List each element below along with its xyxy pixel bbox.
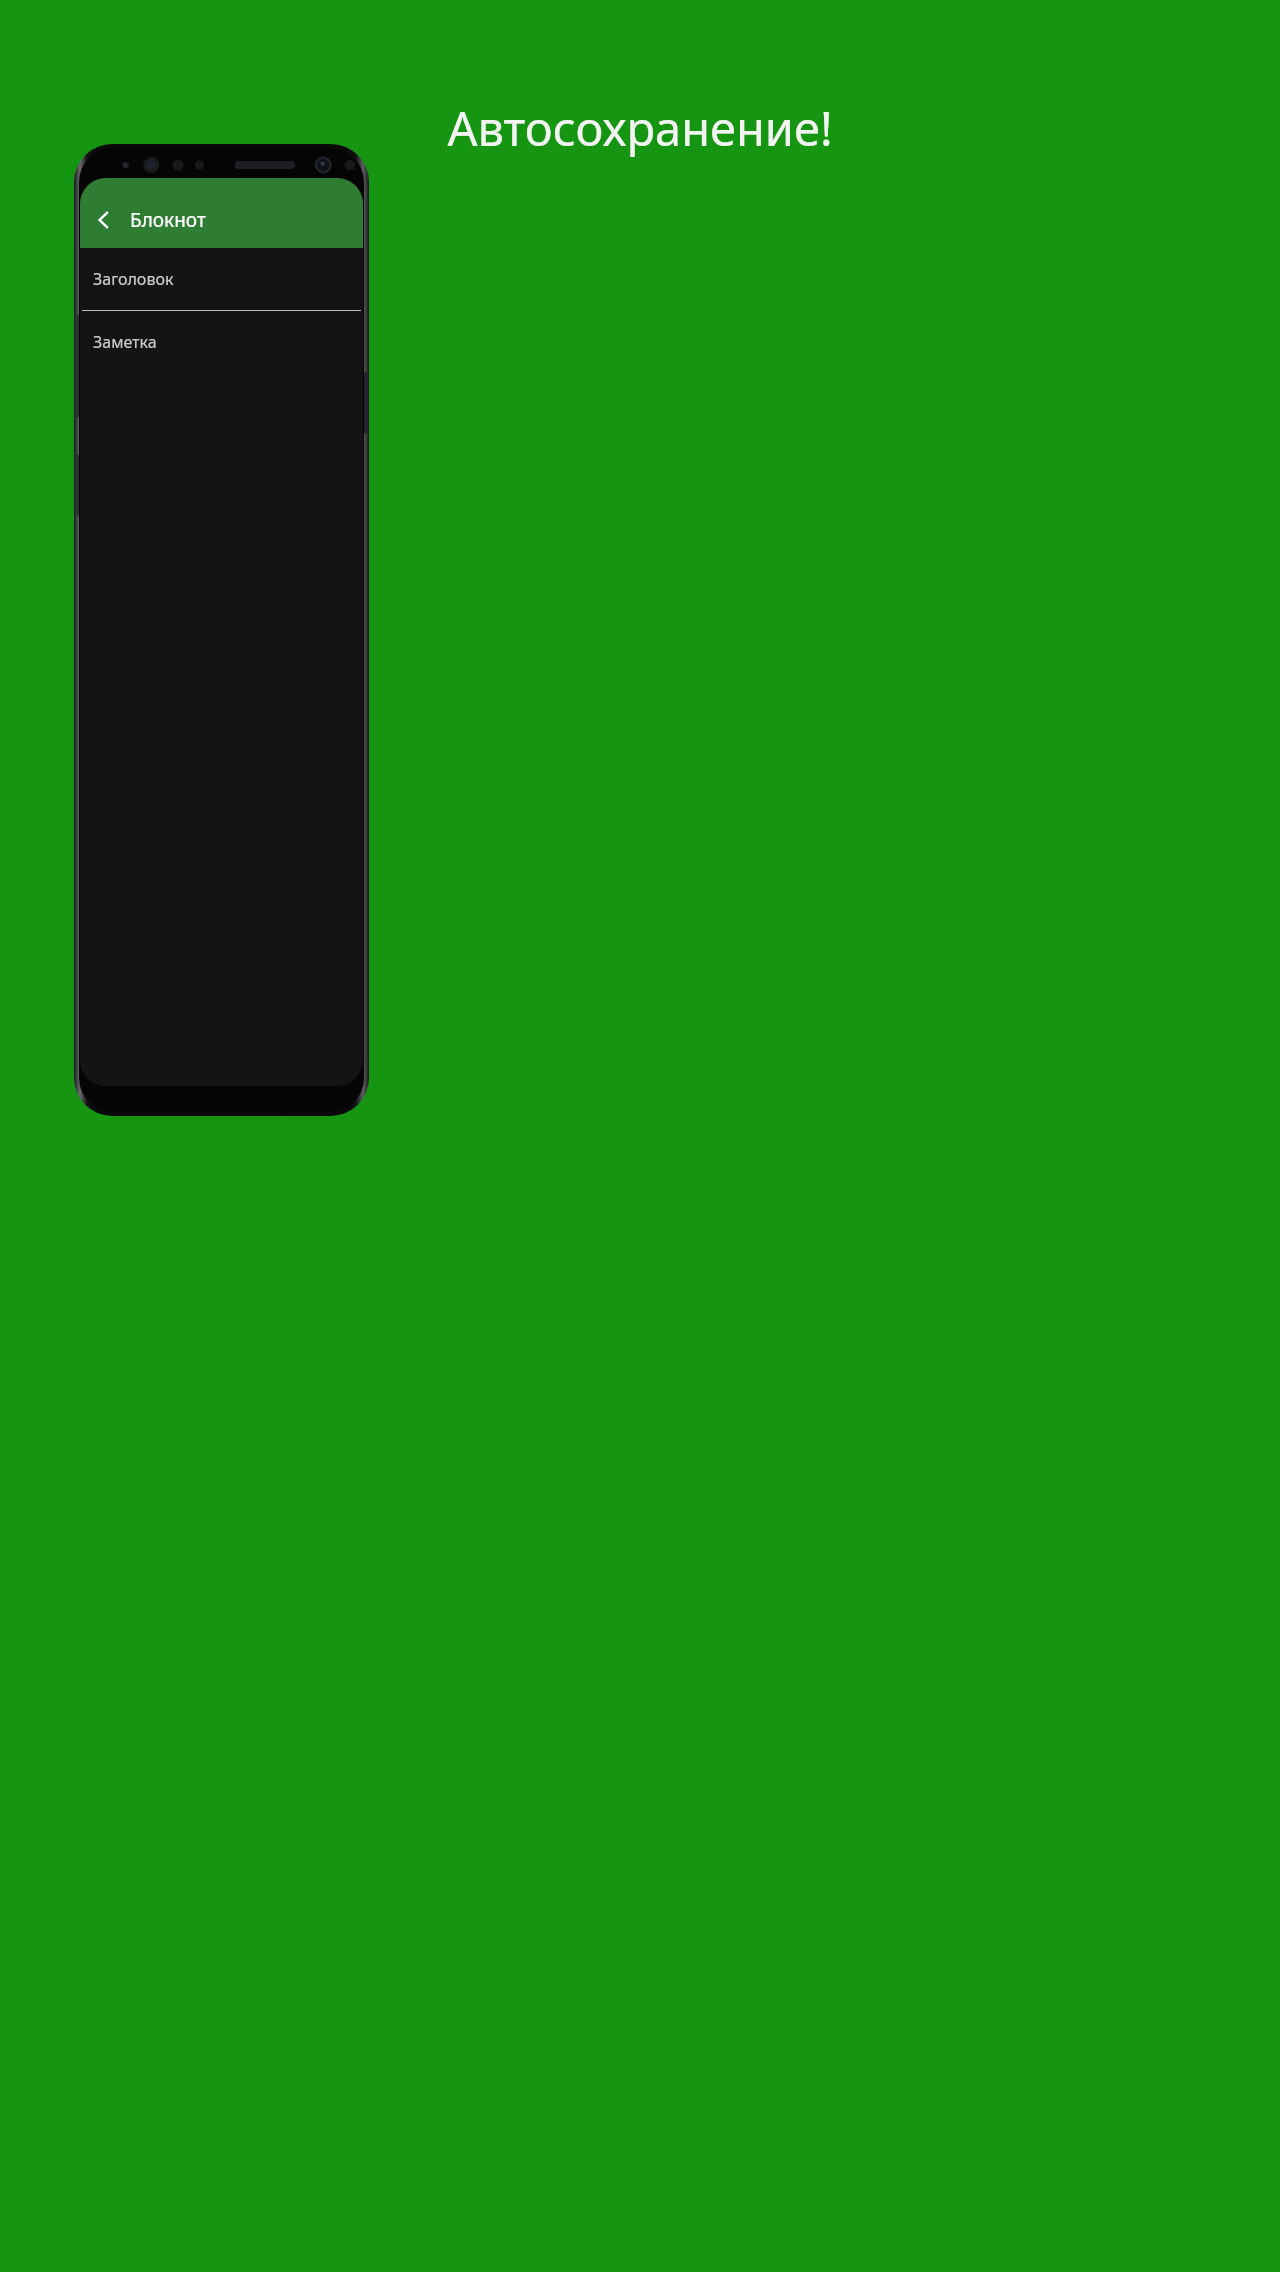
staticText: Блокнот	[130, 207, 206, 233]
button[interactable]: Back	[86, 202, 122, 238]
staticText: Автосохранение!	[0, 96, 1280, 160]
button[interactable]: Заметка	[80, 311, 363, 1086]
staticText: Заметка	[93, 331, 157, 353]
staticText: Заголовок	[93, 268, 174, 290]
button[interactable]: Back	[80, 178, 363, 248]
button[interactable]: Заголовок	[80, 248, 363, 311]
